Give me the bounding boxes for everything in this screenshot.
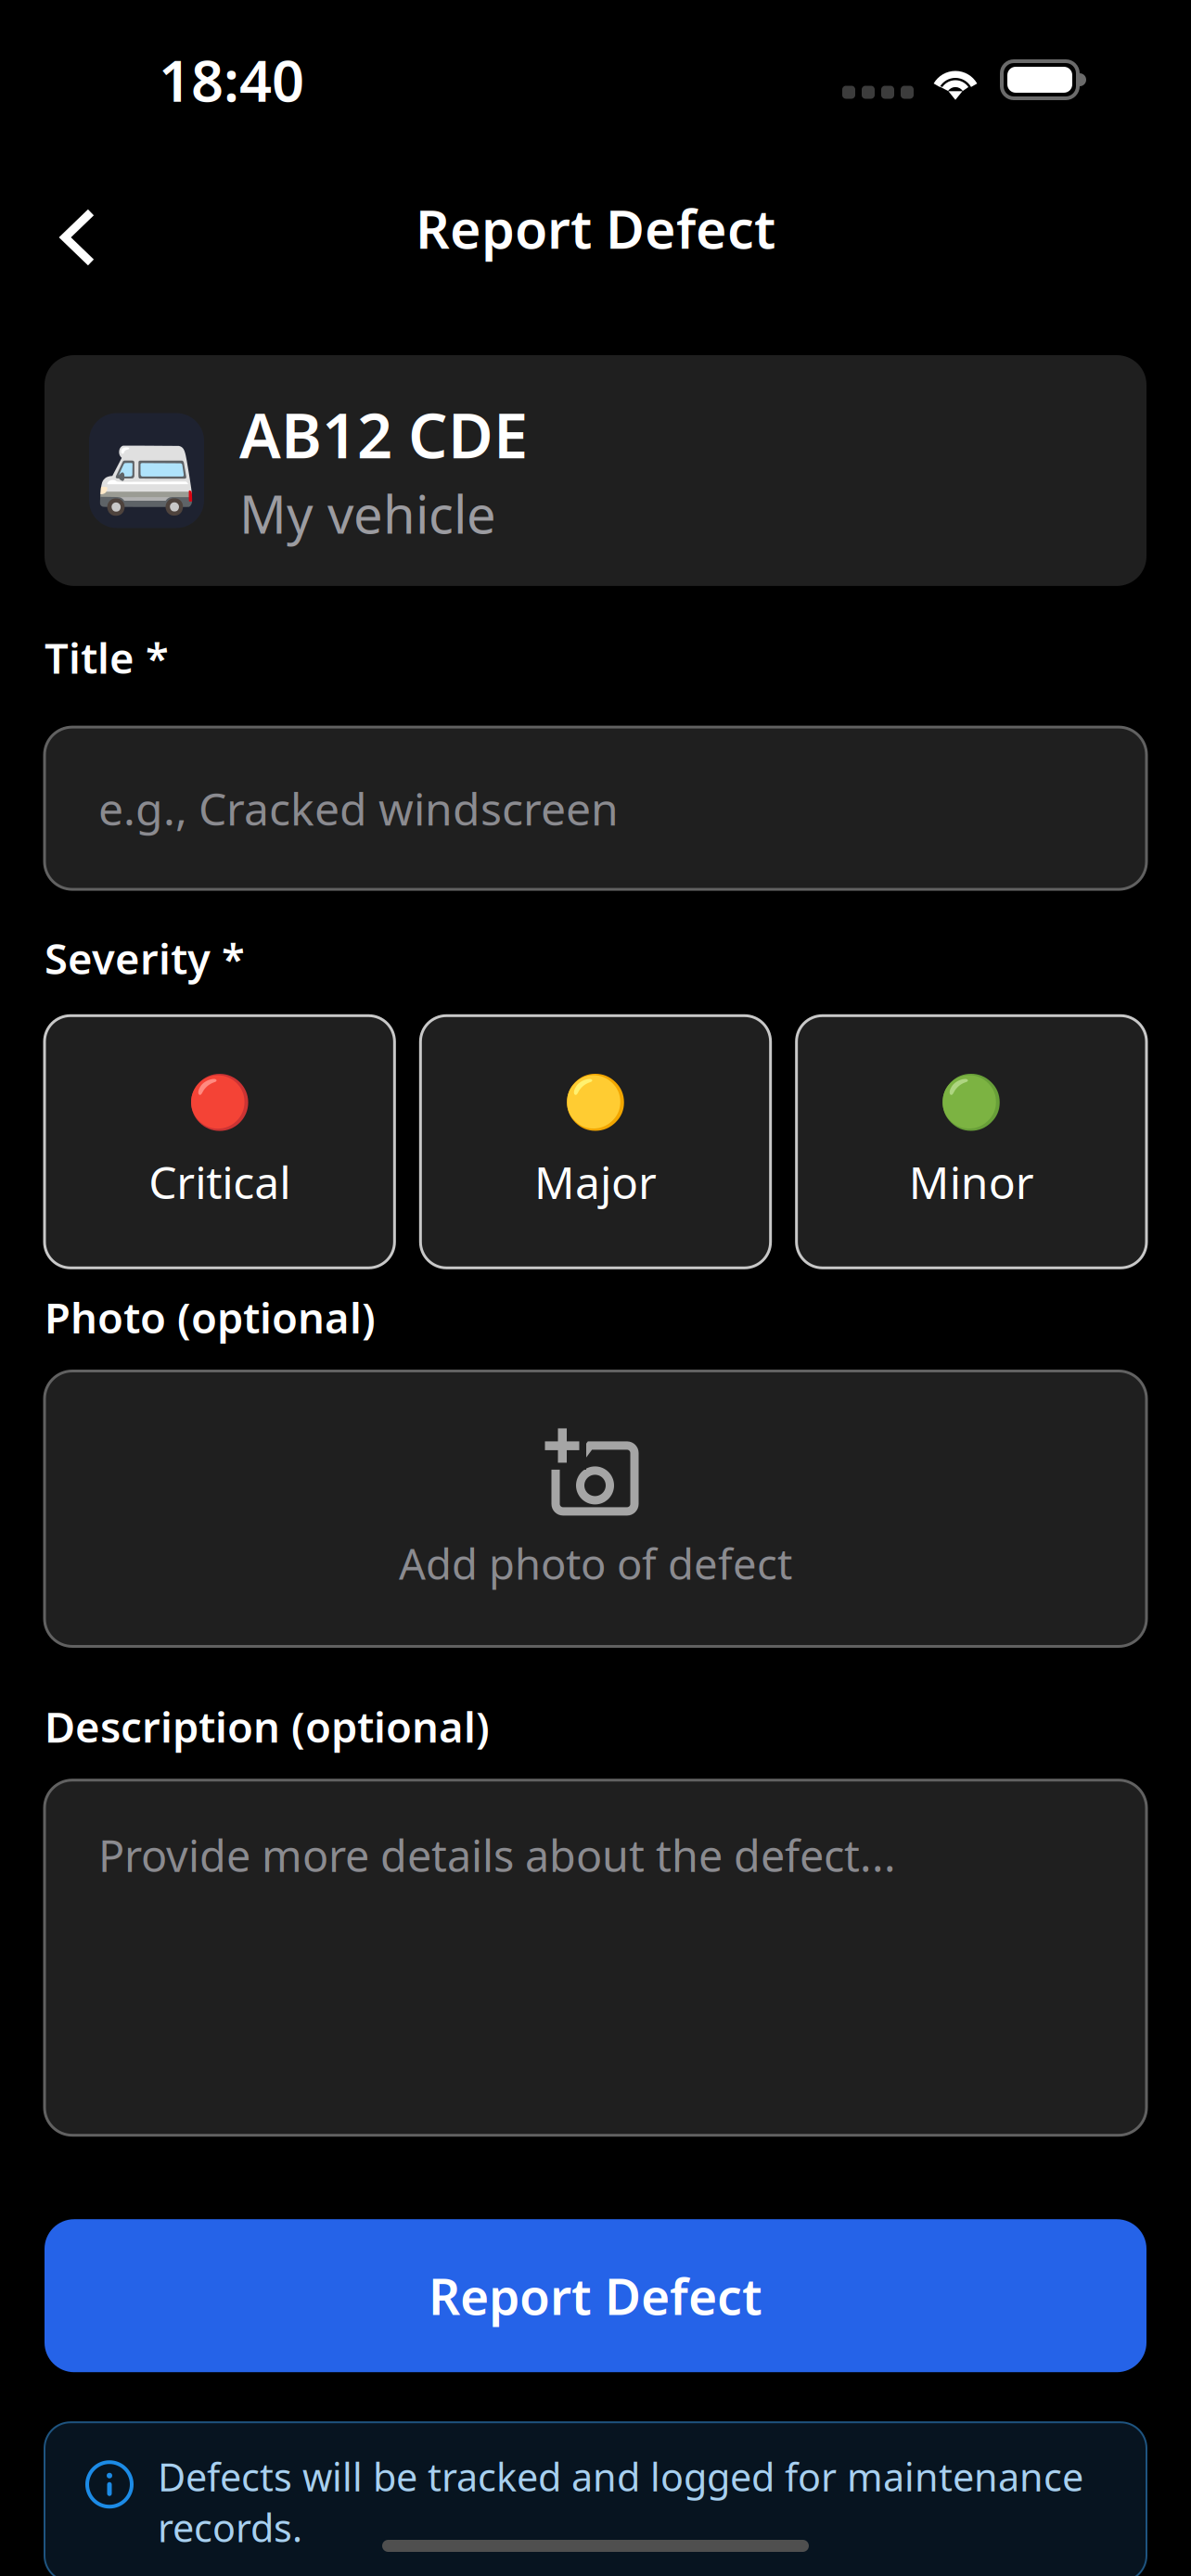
staticText: Title * [45, 630, 169, 685]
staticText: Severity * [45, 930, 245, 986]
staticText: Critical [149, 1152, 291, 1211]
staticText: Description (optional) [45, 1698, 490, 1754]
staticText: e.g., Cracked windscreen [98, 779, 619, 838]
staticText: 🚐 [96, 424, 198, 517]
staticText: My vehicle [239, 479, 496, 548]
button[interactable]: 🟢 [797, 1016, 1146, 1268]
staticText: Minor [909, 1152, 1034, 1211]
staticText: 18:40 [159, 42, 304, 117]
staticText: Report Defect [416, 193, 775, 263]
button[interactable]: e.g., Cracked windscreen [45, 727, 1146, 889]
staticText: Photo (optional) [45, 1289, 376, 1345]
button[interactable]: Report Defect [45, 2219, 1146, 2372]
staticText: 🔴 [187, 1072, 252, 1132]
button[interactable]: 🔴 [45, 1016, 394, 1268]
staticText: 🟡 [563, 1072, 628, 1132]
button[interactable]: Add photo of defect [45, 1371, 1146, 1646]
staticText: Add photo of defect [399, 1535, 792, 1591]
button[interactable]: 🚐 [45, 355, 1146, 586]
staticText: 🟢 [939, 1072, 1004, 1132]
staticText: Provide more details about the defect... [98, 1826, 896, 1884]
button[interactable]: 🟡 [420, 1016, 770, 1268]
button[interactable]: Provide more details about the defect... [45, 1780, 1146, 2135]
staticText: Defects will be tracked and logged for m… [158, 2451, 1083, 2553]
button[interactable]: Back [0, 93, 128, 284]
staticText: Major [534, 1152, 657, 1211]
staticText: AB12 CDE [239, 393, 528, 475]
staticText: Report Defect [429, 2263, 762, 2329]
